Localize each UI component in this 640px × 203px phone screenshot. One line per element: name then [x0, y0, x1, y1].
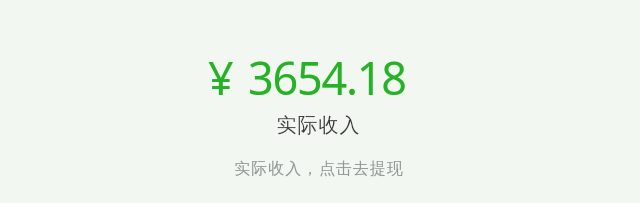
button[interactable]: 实际收入，点击去提现	[234, 159, 404, 179]
staticText: 3654.18	[248, 47, 406, 108]
button[interactable]: ¥	[0, 0, 640, 203]
staticText: ¥	[208, 47, 234, 108]
staticText: 实际收入	[276, 113, 360, 138]
